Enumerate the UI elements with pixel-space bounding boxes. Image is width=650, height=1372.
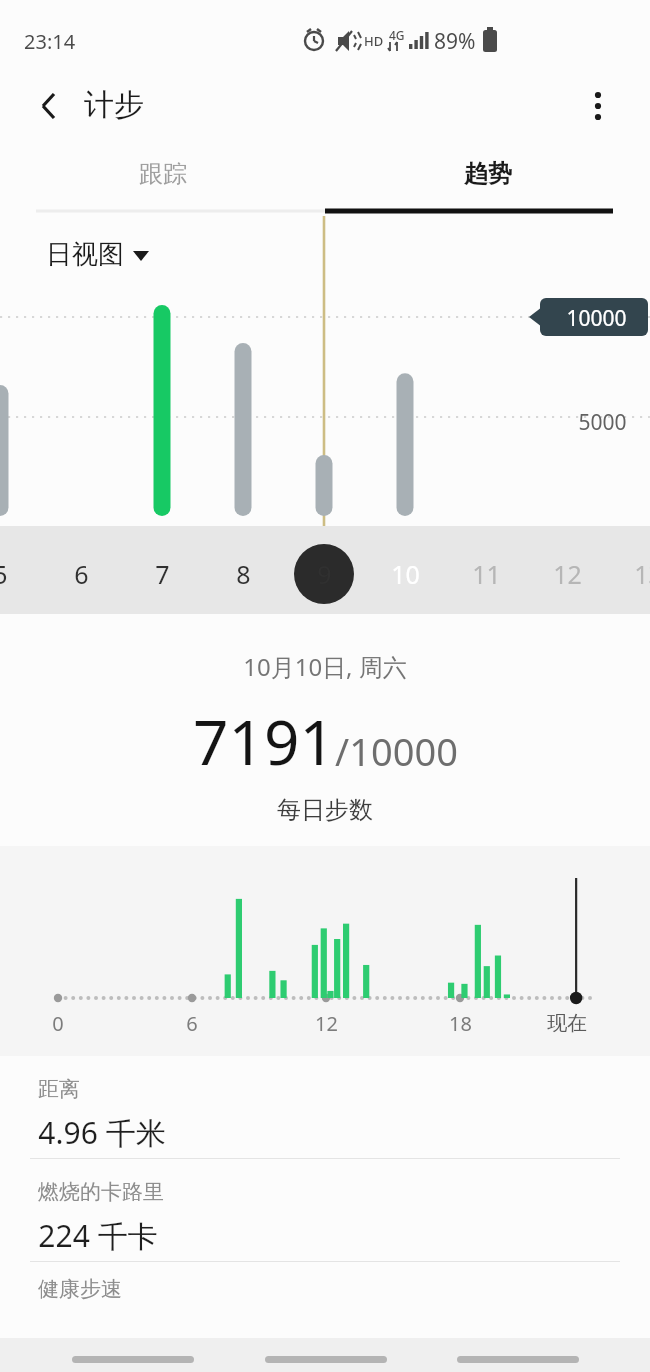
staticText: 224 千卡	[38, 1215, 158, 1256]
staticText: 健康步速	[38, 1276, 122, 1302]
staticText: 10000	[566, 304, 627, 333]
button[interactable]: 10	[365, 544, 445, 604]
staticText: HD	[364, 32, 384, 50]
staticText: 12	[315, 1010, 338, 1037]
staticText: 燃烧的卡路里	[38, 1179, 164, 1205]
button[interactable]: 跟踪	[0, 148, 325, 216]
staticText: 7191	[193, 699, 335, 783]
button[interactable]: 8	[203, 544, 283, 604]
staticText: 距离	[38, 1076, 80, 1102]
staticText: 6	[74, 557, 89, 591]
staticText: 5000	[578, 408, 627, 437]
button[interactable]: 健康步速	[0, 1262, 650, 1306]
staticText: 每日步数	[277, 795, 373, 825]
staticText: 日视图	[46, 238, 124, 271]
staticText: 趋势	[464, 159, 512, 189]
staticText: 计步	[84, 86, 144, 124]
button[interactable]: 趋势	[325, 148, 650, 216]
staticText: 13	[634, 557, 650, 591]
button[interactable]: Home	[263, 1338, 388, 1372]
staticText: 跟踪	[139, 159, 187, 189]
button[interactable]: 13	[608, 544, 650, 604]
staticText: 89%	[434, 27, 476, 56]
staticText: 11	[472, 557, 501, 591]
staticText: 5	[0, 557, 8, 591]
staticText: 现在	[547, 1011, 587, 1036]
button[interactable]: 5	[0, 544, 40, 604]
button[interactable]: 距离	[0, 1056, 650, 1158]
staticText: 0	[52, 1010, 64, 1037]
staticText: 7	[155, 557, 170, 591]
staticText: 8	[236, 557, 251, 591]
button[interactable]: 9	[284, 544, 364, 604]
staticText: 4.96 千米	[38, 1112, 166, 1153]
staticText: 6	[186, 1010, 198, 1037]
button[interactable]: Recents	[70, 1338, 195, 1372]
button[interactable]: 6	[41, 544, 121, 604]
button[interactable]: 日视图	[46, 238, 149, 271]
staticText: 10月10日, 周六	[243, 650, 407, 683]
button[interactable]: 11	[446, 544, 526, 604]
button[interactable]: 12	[527, 544, 607, 604]
staticText: /10000	[335, 725, 458, 777]
button[interactable]: More options	[572, 80, 624, 132]
button[interactable]: Back	[455, 1338, 580, 1372]
staticText: 10	[391, 557, 420, 591]
button[interactable]: 7	[122, 544, 202, 604]
staticText: 12	[553, 557, 582, 591]
button[interactable]: Back	[22, 80, 74, 132]
staticText: 23:14	[24, 28, 76, 55]
button[interactable]: 燃烧的卡路里	[0, 1159, 650, 1261]
staticText: 18	[449, 1010, 472, 1037]
staticText: 4G	[389, 27, 405, 43]
